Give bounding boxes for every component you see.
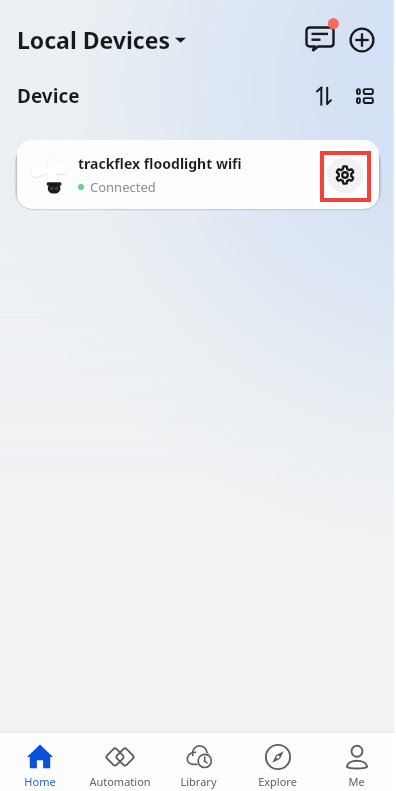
button[interactable]: Messages bbox=[300, 20, 340, 60]
button[interactable]: Library bbox=[159, 733, 238, 791]
staticText: Me bbox=[348, 774, 365, 789]
button[interactable]: Explore bbox=[238, 733, 317, 791]
button[interactable]: Add device bbox=[342, 20, 382, 60]
staticText: Device bbox=[17, 83, 80, 109]
button[interactable]: Sort bbox=[308, 79, 342, 113]
staticText: Automation bbox=[89, 774, 151, 789]
button[interactable]: Home bbox=[0, 733, 80, 791]
staticText: Explore bbox=[258, 774, 297, 789]
button[interactable]: Local Devices bbox=[17, 24, 186, 55]
staticText: Connected bbox=[90, 178, 156, 196]
button[interactable]: Change layout bbox=[348, 79, 382, 113]
button[interactable]: Device settings bbox=[325, 155, 365, 195]
staticText: Local Devices bbox=[17, 24, 170, 55]
button[interactable]: Automation bbox=[80, 733, 159, 791]
staticText: Library bbox=[180, 774, 217, 789]
staticText: Home bbox=[24, 774, 56, 789]
button[interactable]: Me bbox=[317, 733, 396, 791]
button[interactable]: trackflex floodlight wifi bbox=[17, 140, 379, 209]
staticText: trackflex floodlight wifi bbox=[78, 154, 242, 173]
